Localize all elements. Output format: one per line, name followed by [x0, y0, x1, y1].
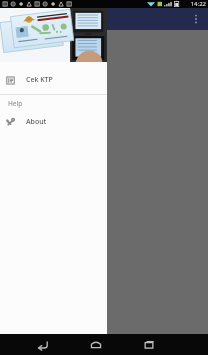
staticText: Cek KTP	[26, 75, 53, 85]
button[interactable]: Recent apps	[138, 334, 160, 355]
button[interactable]: More options	[188, 11, 204, 27]
button[interactable]: Back	[32, 334, 54, 355]
staticText: Help	[8, 99, 23, 108]
button[interactable]: About	[0, 112, 107, 132]
button[interactable]: Cek KTP	[0, 70, 107, 90]
button[interactable]: Home	[85, 334, 107, 355]
staticText: About	[26, 117, 47, 127]
button[interactable]: KTP header image	[0, 8, 107, 62]
button[interactable]	[12, 60, 97, 71]
staticText: 14:22	[190, 0, 206, 8]
button[interactable]	[12, 80, 97, 93]
